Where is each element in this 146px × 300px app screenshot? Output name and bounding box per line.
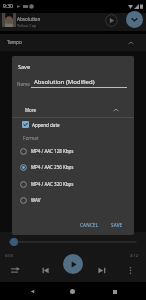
button[interactable]: MP4 / AAC 256 Kbps [12, 159, 134, 175]
staticText: More [25, 107, 37, 113]
button[interactable]: Play [63, 254, 83, 274]
button[interactable]: Next [95, 264, 107, 276]
button[interactable]: Back [26, 285, 39, 298]
staticText: MP4 / AAC 256 Kbps [31, 164, 74, 170]
staticText: 3:12 [130, 253, 138, 258]
button[interactable]: MP4 / AAC 320 Kbps [12, 176, 134, 192]
staticText: Save [18, 63, 31, 70]
staticText: Name [17, 81, 30, 87]
button[interactable]: Previous [39, 264, 51, 276]
staticText: CANCEL [80, 222, 99, 228]
button[interactable]: Shuffle [9, 264, 21, 276]
button[interactable]: Recents [108, 285, 121, 298]
button[interactable]: Append date [12, 118, 134, 131]
staticText: Absolution (Modified) [34, 78, 95, 86]
button[interactable]: SAVE [107, 219, 127, 231]
button[interactable]: Play [105, 14, 118, 27]
staticText: Append date [32, 122, 60, 128]
staticText: MP4 / AAC 320 Kbps [31, 181, 74, 187]
button[interactable]: Collapse [126, 11, 143, 28]
staticText: SAVE [111, 222, 123, 228]
staticText: 0:03 [5, 253, 13, 258]
button[interactable]: More options [124, 264, 136, 276]
staticText: Absolution [17, 16, 41, 22]
button[interactable]: Tempo [0, 34, 146, 51]
staticText: Format [23, 135, 39, 141]
staticText: WAV [31, 197, 41, 203]
staticText: 9:30 [3, 3, 13, 10]
staticText: Yellow Cap [17, 23, 37, 28]
staticText: MP4 / AAC 128 Kbps [31, 148, 74, 154]
button[interactable]: MP4 / AAC 128 Kbps [12, 143, 134, 159]
button[interactable]: CANCEL [76, 219, 103, 231]
button[interactable]: More [12, 103, 134, 117]
staticText: Tempo [7, 39, 22, 45]
button[interactable]: Home [66, 285, 79, 298]
button[interactable]: WAV [12, 192, 134, 208]
